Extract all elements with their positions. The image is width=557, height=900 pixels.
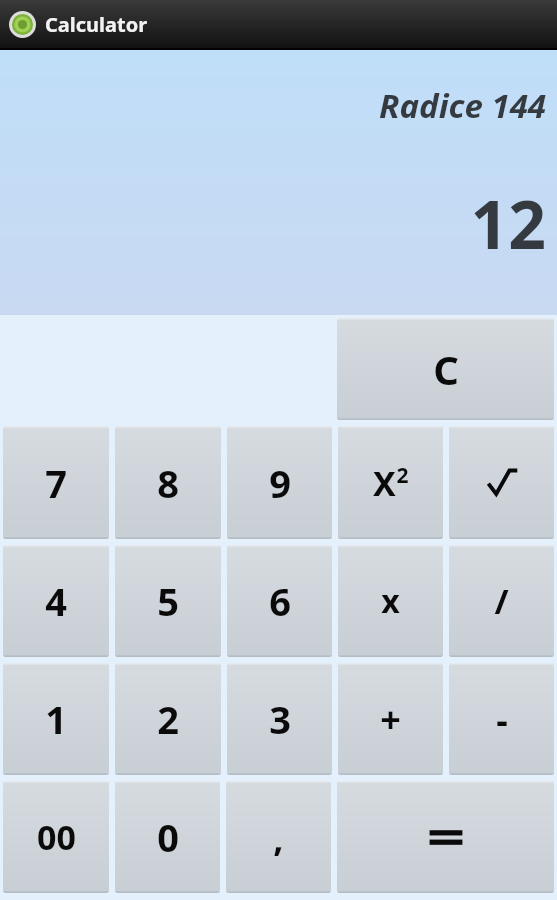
button[interactable]: 8 [115, 426, 221, 539]
button[interactable]: 0 [115, 781, 220, 893]
staticText: 7 [45, 457, 67, 509]
button[interactable]: 2 [115, 663, 221, 775]
staticText: 3 [269, 693, 291, 745]
staticText: / [494, 578, 509, 624]
staticText: - [496, 695, 508, 744]
button[interactable]: 9 [227, 426, 332, 539]
staticText: 2 [157, 693, 179, 745]
button[interactable]: x [338, 545, 443, 657]
button[interactable]: , [226, 781, 331, 893]
staticText: 1 [45, 693, 67, 745]
button[interactable]: Square root [449, 426, 554, 539]
staticText: + [380, 695, 401, 744]
staticText: 8 [157, 457, 179, 509]
staticText: 0 [157, 811, 179, 863]
staticText: , [273, 813, 284, 862]
button[interactable]: Key [337, 781, 554, 893]
staticText: Radice 144 [379, 83, 546, 128]
button[interactable]: 7 [3, 426, 109, 539]
button[interactable]: 1 [3, 663, 109, 775]
staticText: 12 [470, 178, 546, 268]
staticText: 6 [269, 575, 291, 627]
button[interactable]: 5 [115, 545, 221, 657]
staticText: X [373, 460, 396, 506]
staticText: C [433, 342, 459, 396]
button[interactable]: 3 [227, 663, 332, 775]
button[interactable]: C [337, 318, 554, 420]
button[interactable]: / [449, 545, 554, 657]
staticText: 5 [157, 575, 179, 627]
button[interactable]: 4 [3, 545, 109, 657]
button[interactable]: X [338, 426, 443, 539]
staticText: 00 [37, 814, 76, 860]
staticText: x [381, 579, 400, 623]
button[interactable]: - [449, 663, 554, 775]
button[interactable]: + [338, 663, 443, 775]
button[interactable]: 6 [227, 545, 332, 657]
staticText: 2 [396, 461, 409, 490]
staticText: Calculator [45, 11, 148, 38]
staticText: 4 [45, 575, 67, 627]
button[interactable]: 00 [3, 781, 109, 893]
staticText: 9 [269, 457, 291, 509]
